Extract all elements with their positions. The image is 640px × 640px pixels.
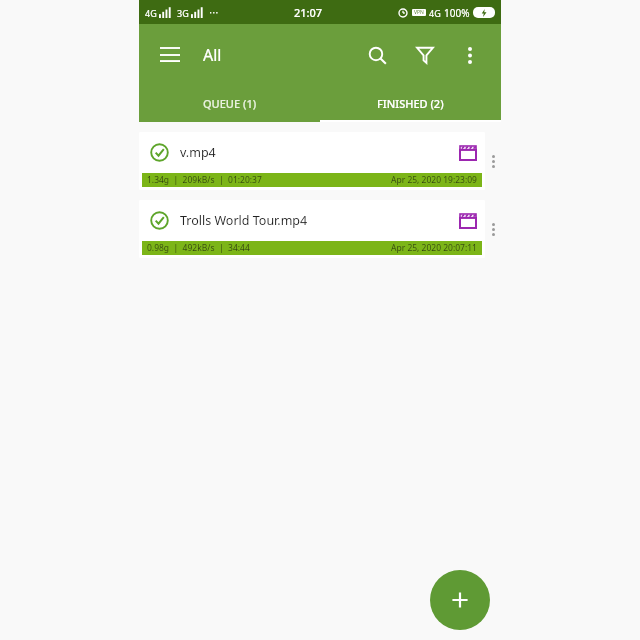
staticText: VPN [414,9,424,16]
staticText: 4G [145,7,157,19]
staticText: ⋯ [209,7,219,19]
button[interactable]: All [203,44,222,66]
staticText: 21:07 [294,5,323,20]
button[interactable]: Item options [485,209,501,250]
button[interactable]: Open video file [459,145,477,161]
button[interactable]: QUEUE (1) [139,85,320,122]
button[interactable]: Item options [485,141,501,182]
staticText: Trolls World Tour.mp4 [180,212,453,229]
staticText: Apr 25, 2020 20:07:11 [391,242,477,254]
button[interactable]: Open navigation menu [153,38,187,72]
staticText: v.mp4 [180,144,453,161]
staticText: QUEUE (1) [203,96,257,111]
staticText: 100% [444,6,470,20]
staticText: FINISHED (2) [377,96,444,111]
button[interactable]: Filter [407,37,443,73]
staticText: 3G [177,7,189,19]
button[interactable]: Add download [430,570,490,630]
staticText: 4G [429,7,441,19]
button[interactable]: Search [359,37,395,73]
button[interactable]: More options [453,38,487,72]
staticText: Apr 25, 2020 19:23:09 [391,174,477,186]
staticText: 1.34g | 209kB/s | 01:20:37 [147,174,262,186]
button[interactable]: Trolls World Tour.mp4 [139,200,485,258]
staticText: 0.98g | 492kB/s | 34:44 [147,242,250,254]
button[interactable]: Open video file [459,213,477,229]
button[interactable]: v.mp4 [139,132,485,190]
button[interactable]: FINISHED (2) [320,85,501,122]
